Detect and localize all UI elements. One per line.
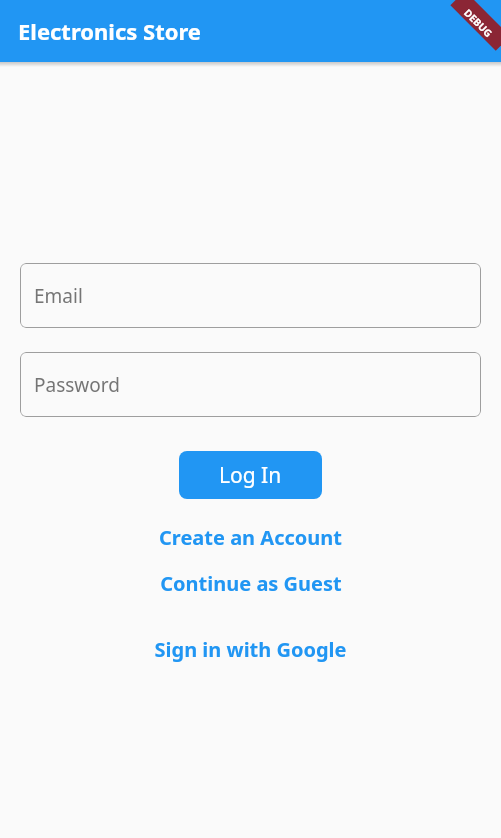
staticText: Email [34, 283, 83, 309]
staticText: Password [34, 372, 120, 398]
staticText: Sign in with Google [154, 636, 347, 663]
staticText: DEBUG [461, 6, 496, 40]
button[interactable]: Create an Account [151, 521, 350, 554]
staticText: Electronics Store [18, 16, 201, 46]
other: Debug banner [439, 0, 501, 62]
staticText: Log In [219, 461, 282, 490]
button[interactable]: Continue as Guest [152, 567, 350, 600]
button[interactable]: Sign in with Google [146, 633, 355, 666]
button[interactable]: Email [20, 263, 481, 328]
button[interactable]: Password [20, 352, 481, 417]
button[interactable]: Log In [179, 451, 322, 499]
staticText: Create an Account [159, 524, 342, 551]
staticText: Continue as Guest [160, 570, 342, 597]
